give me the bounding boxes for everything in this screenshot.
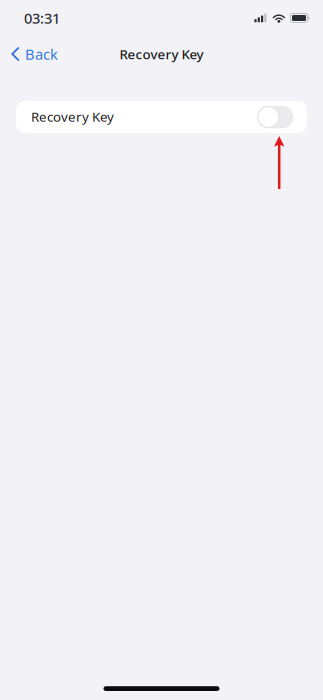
staticText: 03:31 bbox=[24, 8, 60, 28]
button[interactable]: Back bbox=[0, 39, 68, 69]
staticText: Recovery Key bbox=[31, 108, 114, 125]
staticText: Recovery Key bbox=[119, 45, 203, 63]
button[interactable]: Recovery Key bbox=[257, 106, 293, 128]
button[interactable]: Recovery Key bbox=[16, 101, 307, 133]
staticText: Back bbox=[25, 44, 58, 64]
